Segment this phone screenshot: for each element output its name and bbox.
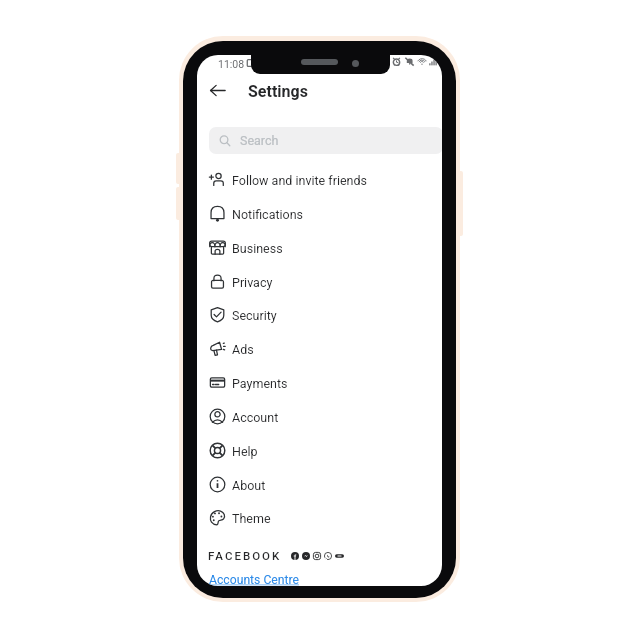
button[interactable]: About <box>197 467 442 501</box>
staticText: Notifications <box>232 207 304 222</box>
staticText: Account <box>232 410 279 425</box>
button[interactable]: Follow and invite friends <box>197 162 442 196</box>
button[interactable]: Account <box>197 399 442 433</box>
staticText: FACEBOOK <box>208 549 282 562</box>
button[interactable]: Privacy <box>197 264 442 298</box>
staticText: Privacy <box>232 275 273 290</box>
staticText: Search <box>240 133 279 148</box>
button[interactable]: Payments <box>197 365 442 399</box>
staticText: Payments <box>232 376 288 391</box>
staticText: Follow and invite friends <box>232 173 367 188</box>
button[interactable]: Ads <box>197 331 442 365</box>
staticText: Help <box>232 444 258 459</box>
button[interactable]: Back <box>205 78 229 102</box>
button[interactable]: Accounts Centre <box>209 573 300 586</box>
staticText: Business <box>232 241 283 256</box>
button[interactable]: Notifications <box>197 196 442 230</box>
button[interactable]: Security <box>197 297 442 331</box>
staticText: Theme <box>232 511 271 526</box>
staticText: Settings <box>248 82 308 101</box>
staticText: About <box>232 478 266 493</box>
staticText: Security <box>232 308 277 323</box>
button[interactable]: Business <box>197 230 442 264</box>
staticText: Ads <box>232 342 254 357</box>
button[interactable]: Help <box>197 433 442 467</box>
button[interactable]: Theme <box>197 500 442 534</box>
button[interactable]: Search <box>209 127 442 154</box>
staticText: 11:08 <box>218 58 245 70</box>
